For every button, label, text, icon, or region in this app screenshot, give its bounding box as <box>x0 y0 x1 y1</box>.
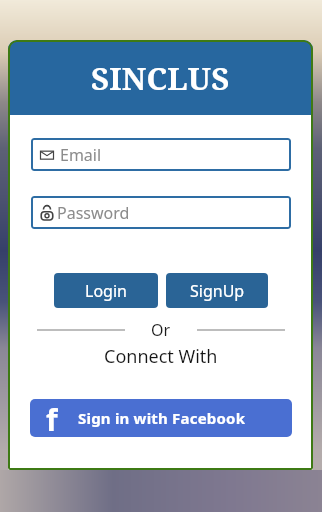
button[interactable]: Email <box>31 138 291 171</box>
button[interactable]: Login <box>54 273 158 308</box>
staticText: Login <box>85 280 127 302</box>
staticText: Connect With <box>104 344 218 369</box>
button[interactable]: SignUp <box>166 273 268 308</box>
staticText: Password <box>57 202 130 224</box>
staticText: Or <box>151 319 171 341</box>
button[interactable]: f <box>30 399 292 437</box>
staticText: f <box>46 399 58 437</box>
staticText: Email <box>60 144 102 166</box>
staticText: SignUp <box>190 280 245 302</box>
button[interactable]: Password <box>31 196 291 229</box>
staticText: Sign in with Facebook <box>78 408 246 428</box>
staticText: SINCLUS <box>91 57 230 99</box>
